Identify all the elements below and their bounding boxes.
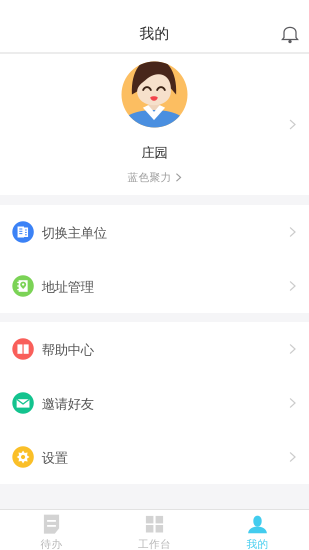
button[interactable]: 待办 (0, 510, 103, 550)
staticText: 地址管理 (42, 279, 94, 295)
button[interactable]: Notifications (275, 18, 305, 48)
staticText: 邀请好友 (42, 396, 94, 412)
staticText: 庄园 (141, 144, 167, 161)
staticText: 蓝色聚力 (127, 171, 171, 184)
button[interactable]: 帮助中心 (0, 322, 309, 376)
button[interactable]: 地址管理 (0, 259, 309, 313)
button[interactable]: 邀请好友 (0, 376, 309, 430)
button[interactable]: 庄园 (0, 54, 309, 195)
staticText: 待办 (40, 538, 62, 550)
button[interactable]: 切换主单位 (0, 205, 309, 259)
staticText: 切换主单位 (42, 225, 107, 241)
staticText: 工作台 (138, 538, 171, 550)
staticText: 设置 (42, 450, 68, 466)
button[interactable]: 我的 (206, 510, 309, 550)
staticText: 我的 (139, 24, 169, 42)
button[interactable]: 工作台 (103, 510, 206, 550)
staticText: 我的 (246, 538, 268, 550)
staticText: 帮助中心 (42, 342, 94, 358)
button[interactable]: 设置 (0, 430, 309, 484)
